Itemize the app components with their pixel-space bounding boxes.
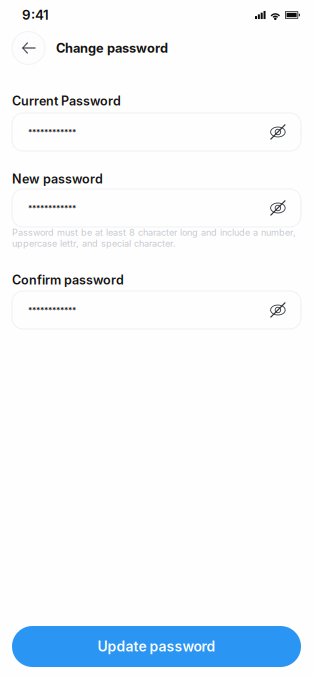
staticText: Confirm password (12, 272, 124, 288)
staticText: ************ (28, 203, 76, 213)
button[interactable]: Update password (12, 626, 301, 667)
staticText: ************ (28, 305, 76, 315)
staticText: New password (12, 171, 103, 187)
staticText: Current Password (12, 93, 121, 109)
button[interactable]: ************ (12, 189, 301, 227)
button[interactable]: Back (12, 31, 45, 64)
staticText: Update password (97, 638, 215, 655)
button[interactable]: ************ (12, 113, 301, 151)
staticText: ************ (28, 127, 76, 137)
button[interactable]: ************ (12, 291, 301, 329)
staticText: Password must be at least 8 character lo… (12, 227, 296, 238)
staticText: Change password (56, 40, 168, 56)
staticText: 9:41 (22, 7, 49, 23)
staticText: uppercase lettr, and special character. (12, 238, 176, 249)
